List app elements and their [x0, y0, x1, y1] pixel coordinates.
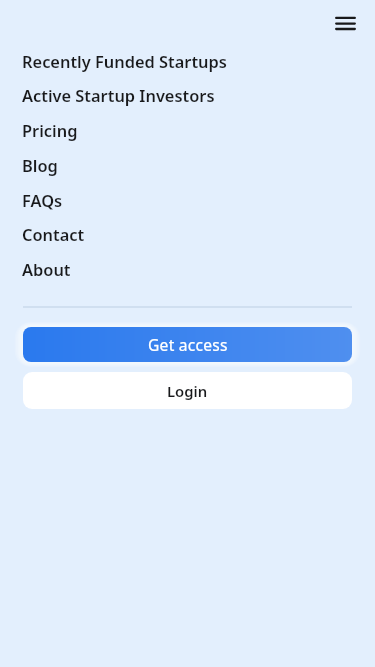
button[interactable]: Open navigation menu [331, 6, 361, 36]
button[interactable]: About [0, 251, 375, 286]
staticText: Contact [22, 223, 85, 245]
staticText: FAQs [22, 189, 63, 211]
staticText: Pricing [22, 119, 78, 141]
button[interactable]: Active Startup Investors [0, 77, 375, 112]
button[interactable]: Contact [0, 216, 375, 251]
button[interactable]: Pricing [0, 112, 375, 147]
button[interactable]: Get access [23, 327, 352, 362]
button[interactable]: FAQs [0, 182, 375, 217]
staticText: About [22, 258, 71, 280]
staticText: Blog [22, 154, 58, 176]
button[interactable]: Blog [0, 147, 375, 182]
staticText: Recently Funded Startups [22, 50, 227, 72]
button[interactable]: Recently Funded Startups [0, 43, 375, 78]
staticText: Login [167, 381, 208, 401]
staticText: Active Startup Investors [22, 84, 215, 106]
staticText: Get access [148, 334, 228, 355]
button[interactable]: Login [23, 372, 352, 409]
